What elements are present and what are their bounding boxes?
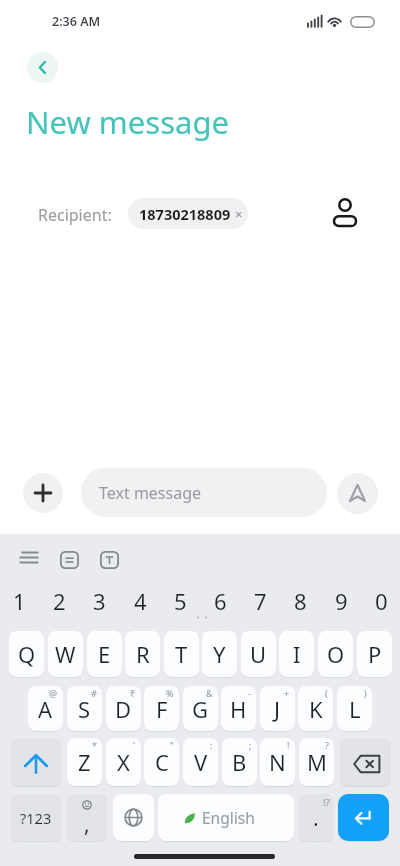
staticText: R [136,639,150,669]
button[interactable]: Q [9,631,44,677]
staticText: V [194,747,208,777]
staticText: ) [364,687,367,699]
button[interactable]: P [357,631,392,677]
button[interactable]: R [125,631,160,677]
button[interactable] [60,551,79,569]
staticText: 3 [93,586,106,616]
staticText: ' [133,739,136,751]
staticText: U [250,639,267,669]
button[interactable]: Z [67,738,102,786]
staticText: Y [213,639,226,669]
button[interactable]: V [183,738,218,786]
button[interactable]: English [158,794,294,841]
staticText: G [192,694,209,724]
button[interactable]: A [28,686,63,731]
staticText: Text message [99,482,202,504]
staticText: ; [249,739,252,751]
button[interactable]: !? [298,794,334,841]
staticText: 1 [13,586,26,616]
staticText: 8 [294,586,307,616]
button[interactable]: S [67,686,102,731]
staticText: : [210,739,213,751]
button[interactable]: 9 [323,584,359,618]
button[interactable] [340,738,391,786]
button[interactable]: 8 [282,584,318,618]
button[interactable]: K [298,686,333,731]
button[interactable]: 7 [242,584,278,618]
button[interactable]: E [87,631,122,677]
staticText: × [235,205,243,223]
staticText: K [309,694,323,724]
staticText: J [274,694,281,724]
staticText: D [115,694,132,724]
button[interactable] [337,473,378,514]
staticText: M [307,747,327,777]
staticText: S [78,694,91,724]
staticText: X [117,747,130,777]
button[interactable]: N [260,738,295,786]
button[interactable]: 5 [162,584,198,618]
button[interactable]: M [299,738,334,786]
button[interactable] [23,473,63,513]
staticText: !? [323,796,330,809]
button[interactable]: J [260,686,295,731]
button[interactable]: Y [202,631,237,677]
staticText: % [166,687,174,699]
staticText: 2 [53,586,66,616]
staticText: Z [78,747,91,777]
button[interactable]: D [106,686,141,731]
staticText: B [232,747,247,777]
staticText: 4 [134,586,147,616]
button[interactable]: 3 [81,584,117,618]
staticText: I [293,639,301,669]
staticText: 6 [214,586,227,616]
staticText: . [313,804,319,833]
button[interactable]: L [337,686,372,731]
button[interactable]: T [164,631,199,677]
staticText: ₹ [130,687,136,699]
button[interactable]: G [183,686,218,731]
staticText: * [92,739,97,751]
button[interactable]: U [241,631,276,677]
staticText: & [206,687,213,699]
button[interactable]: Text message [81,468,327,517]
staticText: N [269,747,286,777]
button[interactable] [338,794,389,841]
button[interactable]: C [144,738,179,786]
staticText: # [91,687,97,699]
staticText: ?123 [20,808,52,828]
button[interactable]: B [222,738,257,786]
button[interactable]: F [144,686,179,731]
staticText: A [38,694,53,724]
staticText: O [327,639,345,669]
button[interactable]: 4 [122,584,158,618]
button[interactable] [11,738,61,786]
button[interactable]: 6 [202,584,238,618]
staticText: English [202,807,255,828]
staticText: " [170,739,174,751]
button[interactable]: I [279,631,314,677]
button[interactable] [331,197,359,231]
button[interactable]: 1 [1,584,37,618]
button[interactable]: 18730218809 [128,198,248,229]
button[interactable]: O [318,631,353,677]
button[interactable] [113,794,154,841]
button[interactable]: H [221,686,256,731]
staticText: Recipient: [38,204,112,226]
staticText: ? [325,739,329,751]
button[interactable] [100,551,119,569]
button[interactable]: W [48,631,83,677]
button[interactable] [19,551,39,565]
button[interactable] [27,52,58,83]
button[interactable]: 0 [363,584,399,618]
staticText: 5 [174,586,187,616]
button[interactable]: X [106,738,141,786]
button[interactable]: ?123 [10,794,62,841]
staticText: New message [26,101,229,143]
staticText: E [98,639,111,669]
staticText: L [349,694,361,724]
staticText: + [284,687,290,699]
button[interactable]: , [67,794,107,841]
button[interactable]: 2 [41,584,77,618]
staticText: 18730218809 [139,204,231,224]
